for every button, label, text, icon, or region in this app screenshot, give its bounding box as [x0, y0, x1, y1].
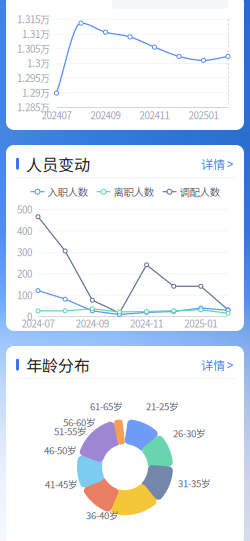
- staticText: 2024-07: [21, 316, 54, 330]
- staticText: 51-55岁: [54, 424, 87, 438]
- staticText: 年龄分布: [26, 353, 90, 376]
- staticText: 300: [17, 245, 32, 259]
- button[interactable]: 详情: [191, 353, 234, 376]
- staticText: 1.3万: [27, 56, 50, 70]
- staticText: 1.31万: [22, 26, 50, 41]
- staticText: 1.29万: [22, 85, 50, 99]
- staticText: >: [226, 156, 234, 171]
- staticText: 离职人数: [113, 184, 153, 199]
- staticText: >: [226, 357, 234, 372]
- staticText: 202501: [188, 108, 218, 122]
- staticText: 202411: [139, 108, 169, 122]
- staticText: 入职人数: [47, 184, 87, 199]
- staticText: 202407: [41, 108, 71, 122]
- staticText: 2024-09: [76, 316, 109, 330]
- staticText: 调配人数: [179, 184, 219, 199]
- staticText: 400: [17, 223, 32, 238]
- staticText: 21-25岁: [146, 399, 179, 413]
- staticText: 1.285万: [17, 100, 50, 114]
- staticText: 详情: [201, 356, 225, 373]
- staticText: 2025-01: [184, 316, 217, 330]
- staticText: 100: [17, 288, 32, 302]
- staticText: 1.315万: [17, 12, 50, 26]
- staticText: 2024-11: [130, 316, 163, 330]
- staticText: 31-35岁: [178, 476, 211, 490]
- staticText: 0: [27, 309, 32, 323]
- staticText: 46-50岁: [44, 443, 77, 457]
- staticText: 36-40岁: [86, 508, 119, 522]
- button[interactable]: 详情: [191, 152, 234, 175]
- staticText: 人员变动: [26, 152, 90, 175]
- staticText: 详情: [201, 155, 225, 172]
- staticText: 200: [17, 266, 32, 281]
- staticText: 61-65岁: [90, 399, 123, 413]
- staticText: 56-60岁: [63, 415, 96, 429]
- staticText: 26-30岁: [173, 426, 206, 440]
- staticText: 1.295万: [17, 70, 50, 85]
- staticText: 1.305万: [17, 41, 50, 55]
- staticText: 500: [17, 202, 32, 216]
- staticText: 41-45岁: [45, 477, 78, 491]
- staticText: 202409: [90, 108, 120, 122]
